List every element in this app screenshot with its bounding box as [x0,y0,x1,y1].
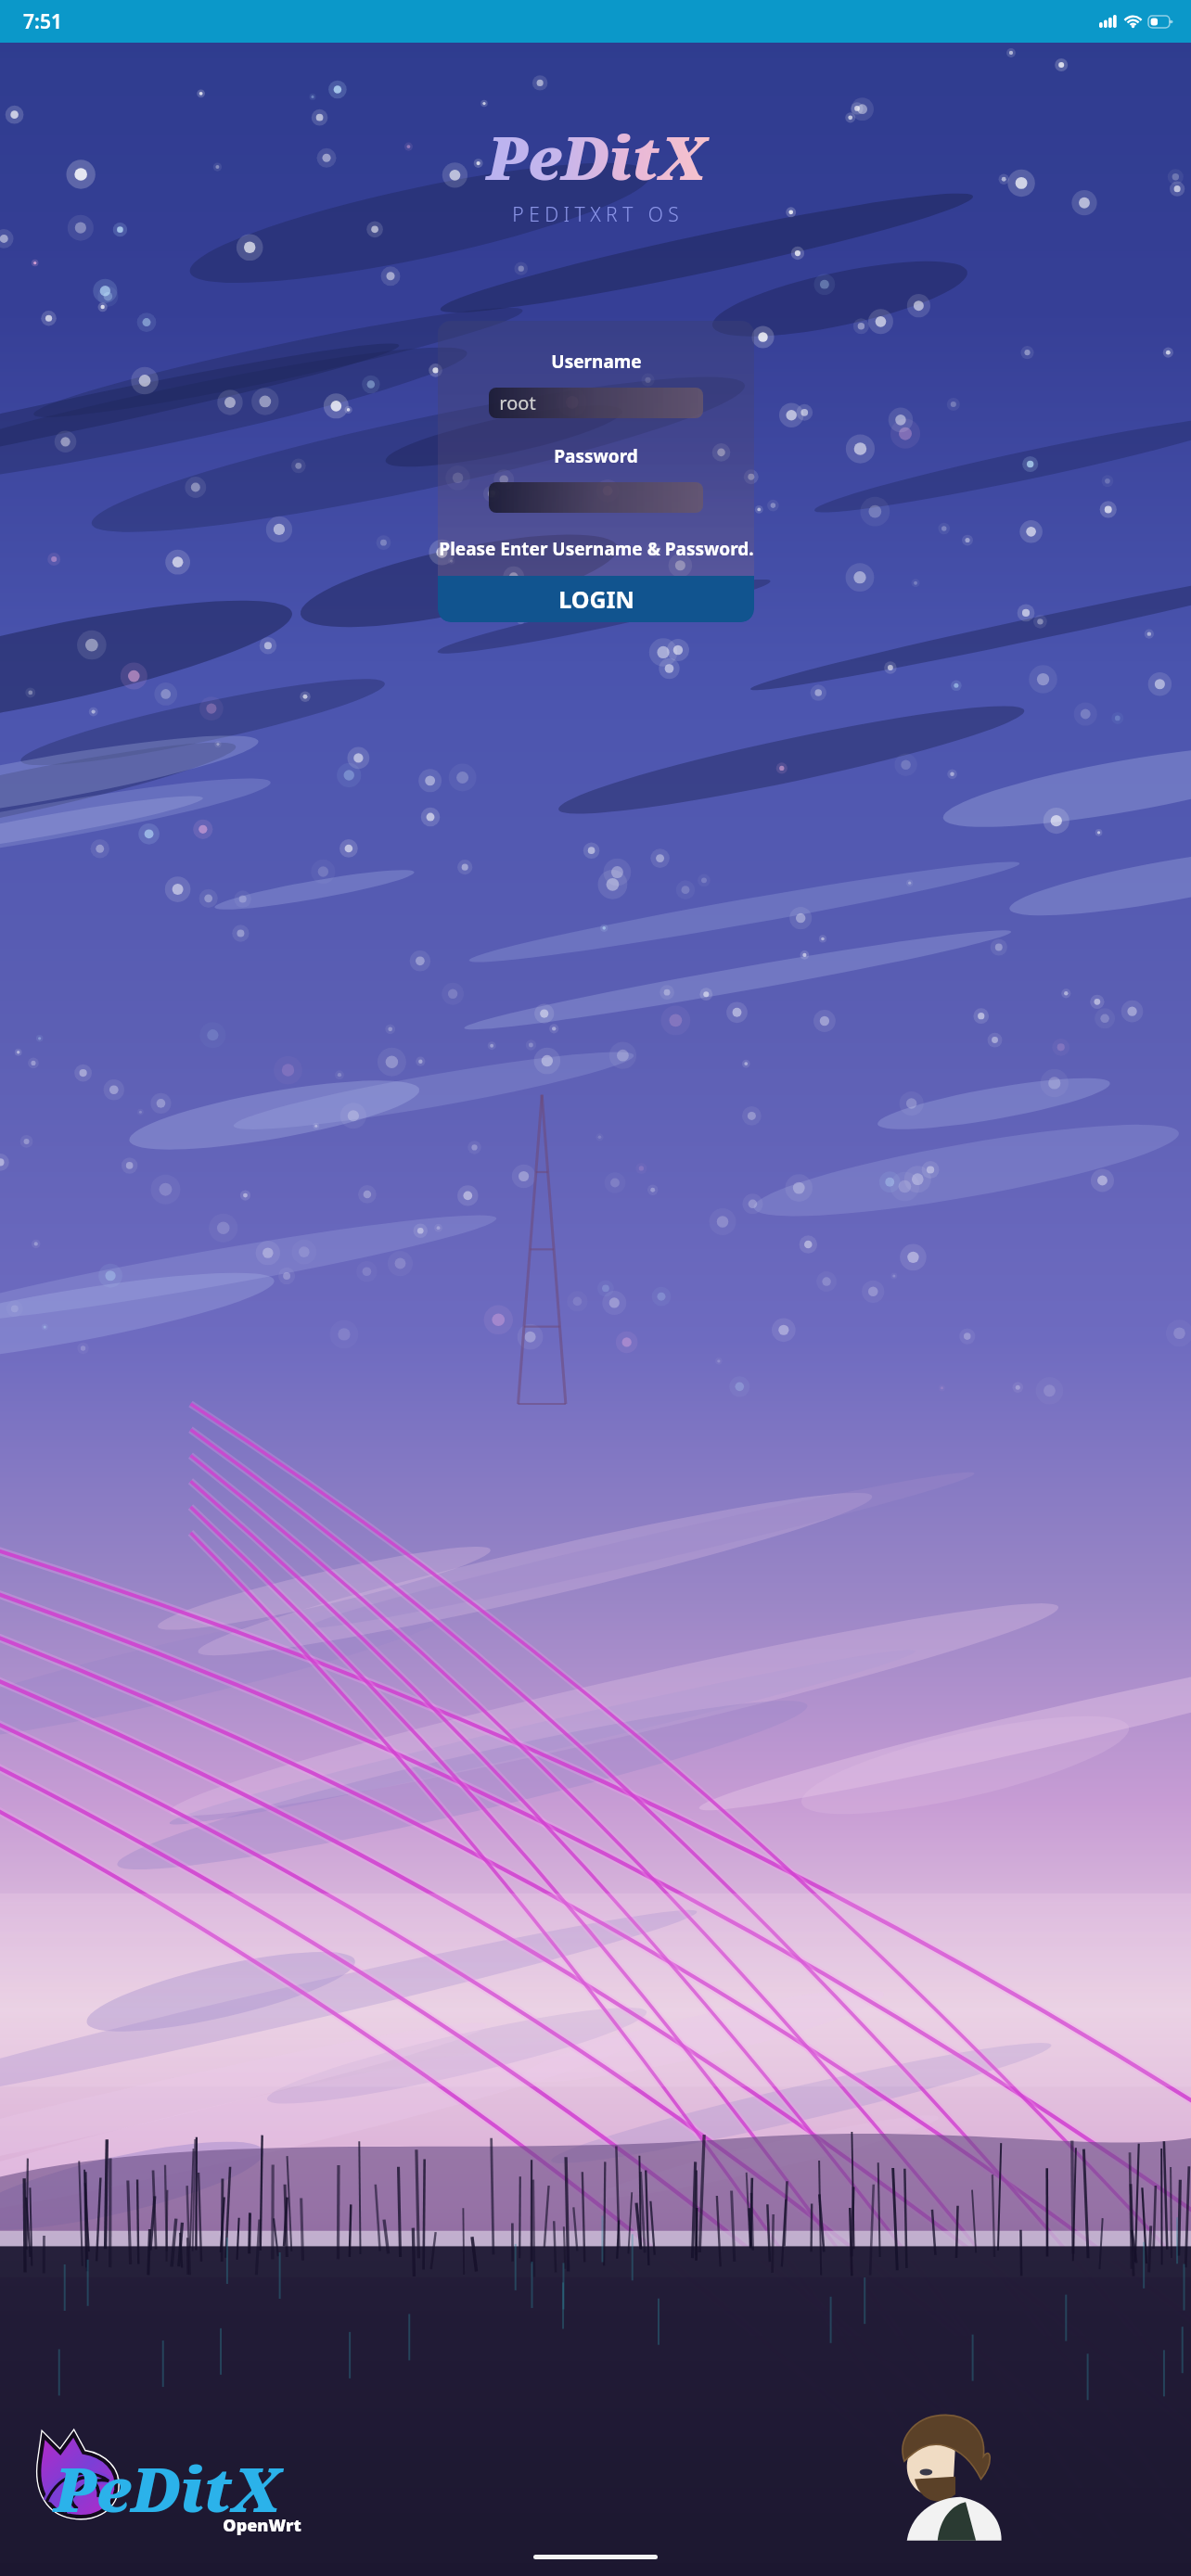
staticText: P E D I T X R T O S [512,201,679,228]
staticText: Username [551,350,642,374]
staticText: LOGIN [558,583,634,615]
staticText: Please Enter Username & Password. [439,537,754,561]
staticText: 7:51 [23,8,62,35]
button[interactable] [489,482,703,513]
staticText: Password [554,444,638,468]
staticText: PeDitX [54,2446,280,2530]
staticText: PeDitX [486,117,706,198]
button[interactable]: LOGIN [438,576,754,622]
staticText: OpenWrt [223,2514,301,2537]
staticText: root [499,390,536,415]
button[interactable]: root [489,388,703,418]
